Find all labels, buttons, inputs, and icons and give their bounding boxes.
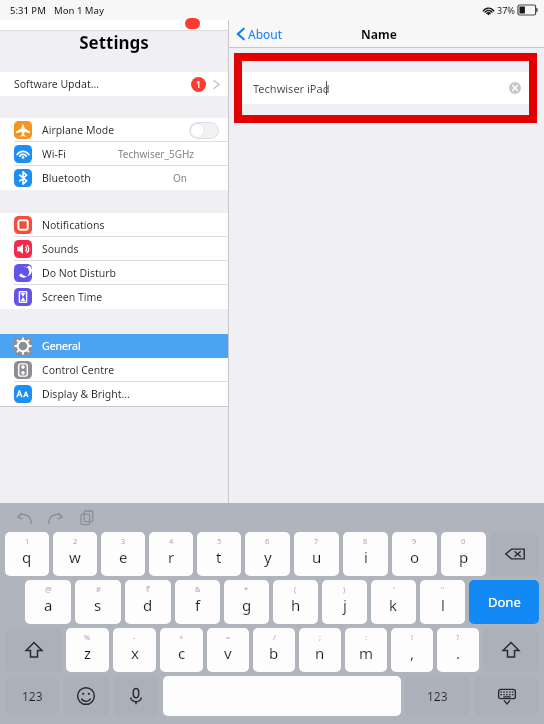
- button[interactable]: *: [224, 580, 269, 624]
- button[interactable]: ': [371, 580, 416, 624]
- staticText: 1: [25, 536, 30, 546]
- button[interactable]: emoji: [63, 676, 109, 716]
- staticText: 5:31 PM: [10, 4, 46, 17]
- button[interactable]: -: [113, 628, 156, 672]
- button[interactable]: 3: [101, 532, 145, 576]
- button[interactable]: Airplane Mode: [0, 118, 228, 142]
- button[interactable]: Paste: [77, 507, 99, 529]
- staticText: Notifications: [42, 218, 105, 232]
- button[interactable]: ): [322, 580, 367, 624]
- button[interactable]: 6: [245, 532, 290, 576]
- staticText: Software Update Will Be Au...: [14, 77, 102, 91]
- staticText: !: [411, 632, 414, 642]
- button[interactable]: ₹: [125, 580, 171, 624]
- button[interactable]: Wi-Fi: [0, 142, 228, 166]
- button[interactable]: %: [66, 628, 109, 672]
- button[interactable]: About: [237, 26, 283, 42]
- staticText: +: [179, 632, 184, 642]
- button[interactable]: Notifications: [0, 213, 228, 237]
- staticText: Techwiser_5GHz: [118, 147, 195, 161]
- button[interactable]: =: [207, 628, 249, 672]
- staticText: -: [133, 632, 136, 642]
- staticText: a: [44, 595, 53, 615]
- staticText: Wi-Fi: [42, 147, 67, 161]
- staticText: @: [45, 584, 52, 594]
- staticText: Do Not Disturb: [42, 266, 117, 280]
- staticText: t: [216, 547, 222, 567]
- button[interactable]: Bluetooth: [0, 166, 228, 190]
- button[interactable]: 123: [405, 676, 470, 716]
- staticText: 2: [73, 536, 78, 546]
- button[interactable]: #: [75, 580, 121, 624]
- staticText: z: [84, 643, 92, 663]
- staticText: 1: [196, 79, 201, 91]
- button[interactable]: key: [163, 676, 401, 716]
- staticText: On: [173, 171, 187, 185]
- button[interactable]: ": [420, 580, 465, 624]
- staticText: ': [393, 584, 395, 594]
- staticText: k: [389, 595, 398, 615]
- button[interactable]: 1: [5, 532, 49, 576]
- button[interactable]: shift: [483, 628, 539, 672]
- staticText: h: [291, 595, 301, 615]
- button[interactable]: Clear text: [509, 82, 521, 94]
- button[interactable]: Display & Brightness: [0, 382, 228, 406]
- staticText: Name: [361, 26, 397, 42]
- button[interactable]: 123: [5, 676, 59, 716]
- staticText: l: [441, 595, 445, 615]
- button[interactable]: shift: [5, 628, 62, 672]
- button[interactable]: 8: [343, 532, 388, 576]
- staticText: 7: [314, 536, 319, 546]
- button[interactable]: Software Update Will Be Au...: [0, 72, 228, 96]
- staticText: 3: [121, 536, 126, 546]
- button[interactable]: ;: [299, 628, 341, 672]
- button[interactable]: Done: [469, 580, 539, 624]
- button[interactable]: (: [273, 580, 318, 624]
- staticText: d: [143, 595, 153, 615]
- button[interactable]: 5: [197, 532, 241, 576]
- button[interactable]: Airplane Mode toggle: [189, 122, 219, 139]
- button[interactable]: Undo: [13, 507, 35, 529]
- button[interactable]: mic: [113, 676, 159, 716]
- button[interactable]: 9: [392, 532, 437, 576]
- button[interactable]: dismiss: [474, 676, 539, 716]
- staticText: r: [168, 547, 175, 567]
- button[interactable]: 2: [53, 532, 97, 576]
- button[interactable]: Sounds: [0, 237, 228, 261]
- button[interactable]: ?: [437, 628, 479, 672]
- staticText: 0: [461, 536, 466, 546]
- staticText: c: [178, 643, 186, 663]
- button[interactable]: /: [253, 628, 295, 672]
- staticText: #: [96, 584, 101, 594]
- staticText: 5: [217, 536, 222, 546]
- button[interactable]: Control Centre: [0, 358, 228, 382]
- button[interactable]: +: [160, 628, 203, 672]
- staticText: p: [459, 547, 469, 567]
- staticText: ,: [410, 643, 415, 663]
- button[interactable]: Techwiser iPad: [242, 72, 529, 104]
- button[interactable]: Do Not Disturb: [0, 261, 228, 285]
- staticText: b: [269, 643, 279, 663]
- staticText: u: [312, 547, 322, 567]
- staticText: ₹: [146, 584, 151, 594]
- button[interactable]: General: [0, 334, 228, 358]
- staticText: v: [224, 643, 232, 663]
- button[interactable]: &: [175, 580, 220, 624]
- staticText: ": [441, 584, 445, 594]
- staticText: g: [242, 595, 252, 615]
- staticText: 8: [363, 536, 368, 546]
- staticText: Bluetooth: [42, 171, 91, 185]
- button[interactable]: Redo: [45, 507, 67, 529]
- button[interactable]: 4: [149, 532, 193, 576]
- staticText: y: [264, 547, 272, 567]
- staticText: Techwiser iPad: [253, 81, 330, 96]
- button[interactable]: :: [345, 628, 387, 672]
- staticText: :: [365, 632, 368, 642]
- button[interactable]: @: [25, 580, 71, 624]
- button[interactable]: !: [391, 628, 433, 672]
- button[interactable]: Screen Time: [0, 285, 228, 309]
- button[interactable]: 0: [441, 532, 486, 576]
- staticText: Done: [488, 593, 521, 611]
- button[interactable]: backspace: [490, 532, 539, 576]
- button[interactable]: 7: [294, 532, 339, 576]
